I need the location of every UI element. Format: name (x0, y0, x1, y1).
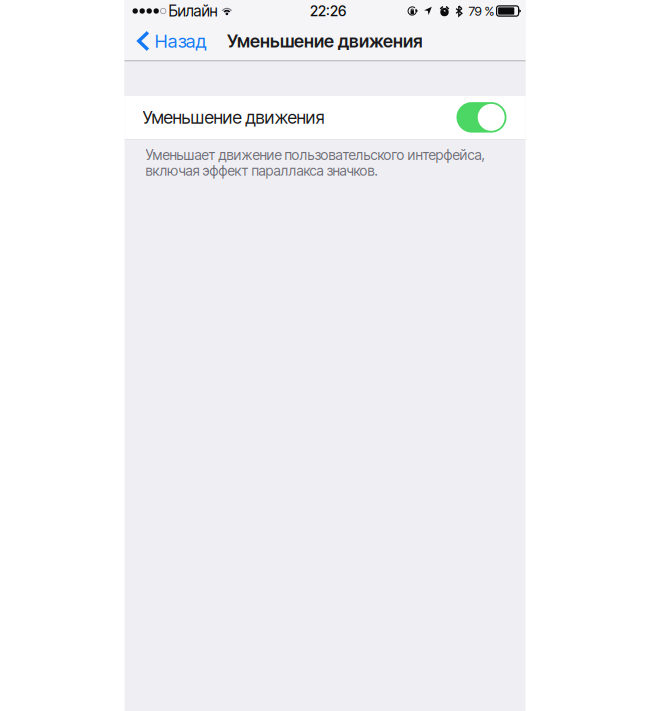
staticText: Уменьшение движения (227, 30, 423, 52)
button[interactable]: Назад (124, 26, 215, 56)
staticText: 79 % (468, 3, 494, 19)
staticText: Уменьшает движение пользовательского инт… (145, 147, 484, 163)
button[interactable]: Уменьшение движения (124, 96, 525, 139)
staticText: включая эффект параллакса значков. (145, 162, 377, 179)
staticText: 22:26 (310, 2, 346, 19)
staticText: Назад (155, 30, 207, 52)
staticText: Билайн (168, 2, 217, 20)
staticText: Уменьшение движения (142, 107, 324, 128)
